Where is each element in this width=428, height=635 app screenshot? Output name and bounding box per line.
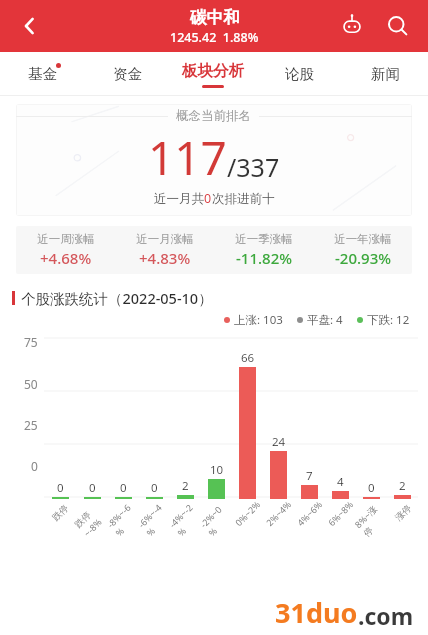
button[interactable]: 近一周涨幅 <box>16 226 115 274</box>
staticText: +4.83% <box>139 248 191 268</box>
staticText: 跌停 <box>50 502 70 523</box>
staticText: -4%~-2% <box>166 500 205 538</box>
staticText: 2 <box>399 478 406 494</box>
staticText: -2%~0% <box>197 500 236 538</box>
staticText: 10 <box>210 462 224 478</box>
staticText: 近一年涨幅 <box>334 232 392 246</box>
staticText: 新闻 <box>371 65 400 83</box>
staticText: 次排进前十 <box>212 191 275 207</box>
staticText: 0 <box>204 190 212 207</box>
staticText: 涨停 <box>393 502 413 523</box>
staticText: 7 <box>306 468 313 484</box>
staticText: /337 <box>227 150 280 184</box>
staticText: 1245.42 1.88% <box>170 29 259 46</box>
staticText: 0 <box>89 480 96 496</box>
staticText: 基金 <box>28 65 57 83</box>
staticText: 4 <box>337 474 344 490</box>
button[interactable]: Back <box>8 4 52 48</box>
staticText: 概念当前排名 <box>176 108 251 124</box>
button[interactable]: 论股 <box>256 52 342 96</box>
staticText: 8%~涨停 <box>352 500 391 539</box>
staticText: 近一季涨幅 <box>235 232 293 246</box>
staticText: 66 <box>241 350 255 366</box>
button[interactable]: Search <box>378 6 418 46</box>
button[interactable]: 基金 <box>0 52 85 96</box>
staticText: 近一周涨幅 <box>37 232 95 246</box>
staticText: 0 <box>120 480 127 496</box>
button[interactable]: 近一月涨幅 <box>115 226 214 274</box>
staticText: -20.93% <box>335 248 391 268</box>
button[interactable]: 资金 <box>85 52 170 96</box>
staticText: -8%~-6% <box>104 500 143 538</box>
staticText: 24 <box>272 434 286 450</box>
staticText: 资金 <box>113 65 142 83</box>
staticText: 板块分析 <box>182 61 244 81</box>
button[interactable]: 近一季涨幅 <box>214 226 313 274</box>
staticText: -11.82% <box>236 248 292 268</box>
button[interactable]: 近一年涨幅 <box>313 226 412 274</box>
staticText: 个股涨跌统计（2022-05-10） <box>21 288 213 308</box>
staticText: 117 <box>148 126 227 189</box>
staticText: 75 <box>24 334 38 350</box>
staticText: 4%~6% <box>294 498 325 528</box>
staticText: 碳中和 <box>190 7 240 28</box>
staticText: 25 <box>24 417 38 433</box>
staticText: 近一月共 <box>154 191 204 207</box>
staticText: 0 <box>368 480 375 496</box>
staticText: 6%~8% <box>325 498 356 528</box>
staticText: 0%~2% <box>232 498 263 528</box>
staticText: 平盘: 4 <box>307 312 343 328</box>
staticText: 下跌: 12 <box>367 312 410 328</box>
staticText: 2%~4% <box>263 498 294 528</box>
staticText: 50 <box>24 376 38 392</box>
staticText: 0 <box>151 480 158 496</box>
button[interactable]: 板块分析 <box>170 52 256 96</box>
staticText: 0 <box>31 458 38 474</box>
staticText: 上涨: 103 <box>234 312 283 328</box>
staticText: 0 <box>57 480 64 496</box>
button[interactable]: 新闻 <box>342 52 428 96</box>
staticText: 论股 <box>285 65 314 83</box>
button[interactable]: 概念当前排名 <box>16 104 412 216</box>
staticText: -6%~-4% <box>135 500 174 538</box>
staticText: .com <box>358 600 414 631</box>
staticText: 近一月涨幅 <box>136 232 194 246</box>
button[interactable]: AI assistant <box>332 6 372 46</box>
staticText: 2 <box>182 478 189 494</box>
staticText: +4.68% <box>40 248 92 268</box>
staticText: 跌停~-8% <box>72 499 112 539</box>
staticText: 31duo <box>275 594 358 631</box>
